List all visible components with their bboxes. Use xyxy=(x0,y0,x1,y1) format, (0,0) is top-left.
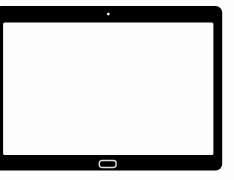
button[interactable]: Home xyxy=(99,161,116,168)
button[interactable]: Display xyxy=(3,22,213,155)
button[interactable]: Android tablet xyxy=(0,0,234,180)
